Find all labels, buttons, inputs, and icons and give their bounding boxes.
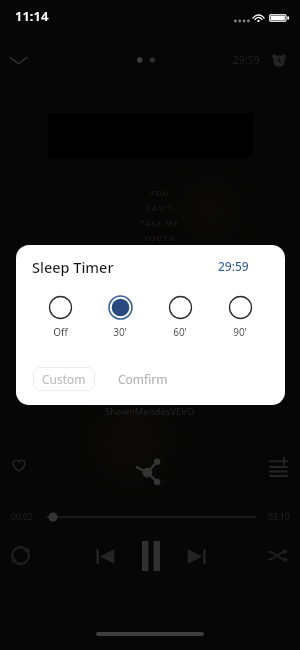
staticText: 03:10 — [268, 511, 290, 523]
button[interactable]: Previous track — [88, 539, 122, 573]
button[interactable]: Like — [4, 450, 34, 480]
staticText: 29:59 — [218, 258, 249, 274]
button[interactable]: Shuffle — [263, 540, 293, 570]
staticText: Off — [53, 325, 68, 339]
button[interactable]: Custom — [33, 367, 95, 391]
staticText: 90' — [233, 325, 247, 339]
staticText: YOUTH — [144, 233, 176, 243]
staticText: 30' — [113, 325, 127, 339]
button[interactable]: Add to playlist — [263, 452, 293, 482]
staticText: Sleep Timer — [32, 257, 114, 277]
button[interactable]: 90' — [216, 295, 264, 339]
button[interactable]: Comfirm — [112, 367, 174, 391]
button[interactable]: Seek bar — [47, 509, 256, 525]
staticText: CAN'T — [146, 203, 174, 213]
staticText: YOU — [150, 188, 170, 198]
button[interactable]: Sleep timer — [268, 49, 290, 71]
button[interactable]: Collapse player — [3, 45, 33, 75]
button[interactable]: 30' — [96, 295, 144, 339]
button[interactable]: 60' — [156, 295, 204, 339]
button[interactable]: Pause — [133, 538, 168, 573]
staticText: 00:02 — [11, 511, 33, 523]
staticText: Comfirm — [118, 371, 168, 387]
button[interactable]: Repeat — [5, 540, 35, 570]
button[interactable]: Share — [132, 454, 166, 488]
staticText: 60' — [173, 325, 187, 339]
button[interactable]: Next track — [179, 539, 213, 573]
button[interactable]: Off — [36, 295, 84, 339]
staticText: 11:14 — [15, 7, 49, 25]
staticText: TAKE MY — [140, 218, 180, 228]
staticText: 29:59 — [233, 53, 260, 67]
staticText: Custom — [42, 371, 86, 387]
staticText: ShawnMendesVEVO — [105, 405, 195, 418]
